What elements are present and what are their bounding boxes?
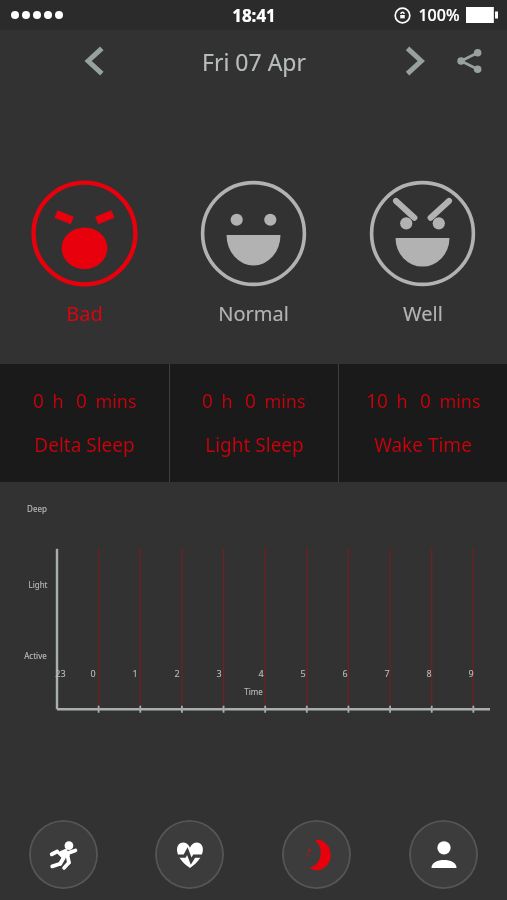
button[interactable]: Sleep (282, 820, 351, 889)
staticText: Normal (218, 300, 289, 327)
staticText: Well (403, 300, 443, 327)
button[interactable]: 0 (170, 364, 338, 482)
staticText: 0 (76, 388, 87, 414)
button[interactable]: Previous day (76, 42, 114, 80)
staticText: mins (264, 389, 306, 414)
button[interactable]: 0 (0, 364, 169, 482)
button[interactable]: Activity (29, 820, 98, 889)
staticText: 0 (90, 667, 96, 679)
staticText: 8 (426, 667, 432, 679)
staticText: 100% (418, 4, 460, 26)
staticText: h (52, 389, 64, 414)
button[interactable]: 10 (339, 364, 507, 482)
staticText: 18:41 (232, 4, 276, 27)
staticText: Time (244, 686, 263, 697)
staticText: Light (28, 579, 48, 590)
button[interactable]: Normal (169, 180, 338, 338)
staticText: 7 (384, 667, 390, 679)
staticText: mins (95, 389, 137, 414)
staticText: 2 (174, 667, 180, 679)
staticText: 6 (342, 667, 348, 679)
staticText: 0 (202, 388, 213, 414)
button[interactable]: Heart rate (155, 820, 224, 889)
staticText: 0 (33, 388, 44, 414)
staticText: mins (439, 389, 481, 414)
staticText: 23 (55, 667, 66, 679)
button[interactable]: Share (451, 43, 487, 79)
staticText: h (221, 389, 233, 414)
staticText: Delta Sleep (34, 432, 135, 458)
button[interactable]: Fri 07 Apr (202, 46, 306, 77)
staticText: Active (24, 650, 47, 661)
button[interactable]: Bad (0, 180, 169, 338)
button[interactable]: Next day (395, 42, 433, 80)
staticText: 4 (258, 667, 264, 679)
staticText: 0 (245, 388, 256, 414)
button[interactable]: Profile (409, 820, 478, 889)
button[interactable]: Well (338, 180, 507, 338)
staticText: Bad (66, 300, 103, 327)
staticText: 9 (468, 667, 474, 679)
staticText: 5 (300, 667, 306, 679)
staticText: 10 (366, 388, 388, 414)
staticText: 3 (216, 667, 222, 679)
staticText: 0 (420, 388, 431, 414)
staticText: Deep (27, 503, 47, 514)
staticText: h (396, 389, 408, 414)
staticText: 1 (132, 667, 138, 679)
staticText: Light Sleep (205, 432, 304, 458)
staticText: Wake Time (374, 432, 472, 458)
